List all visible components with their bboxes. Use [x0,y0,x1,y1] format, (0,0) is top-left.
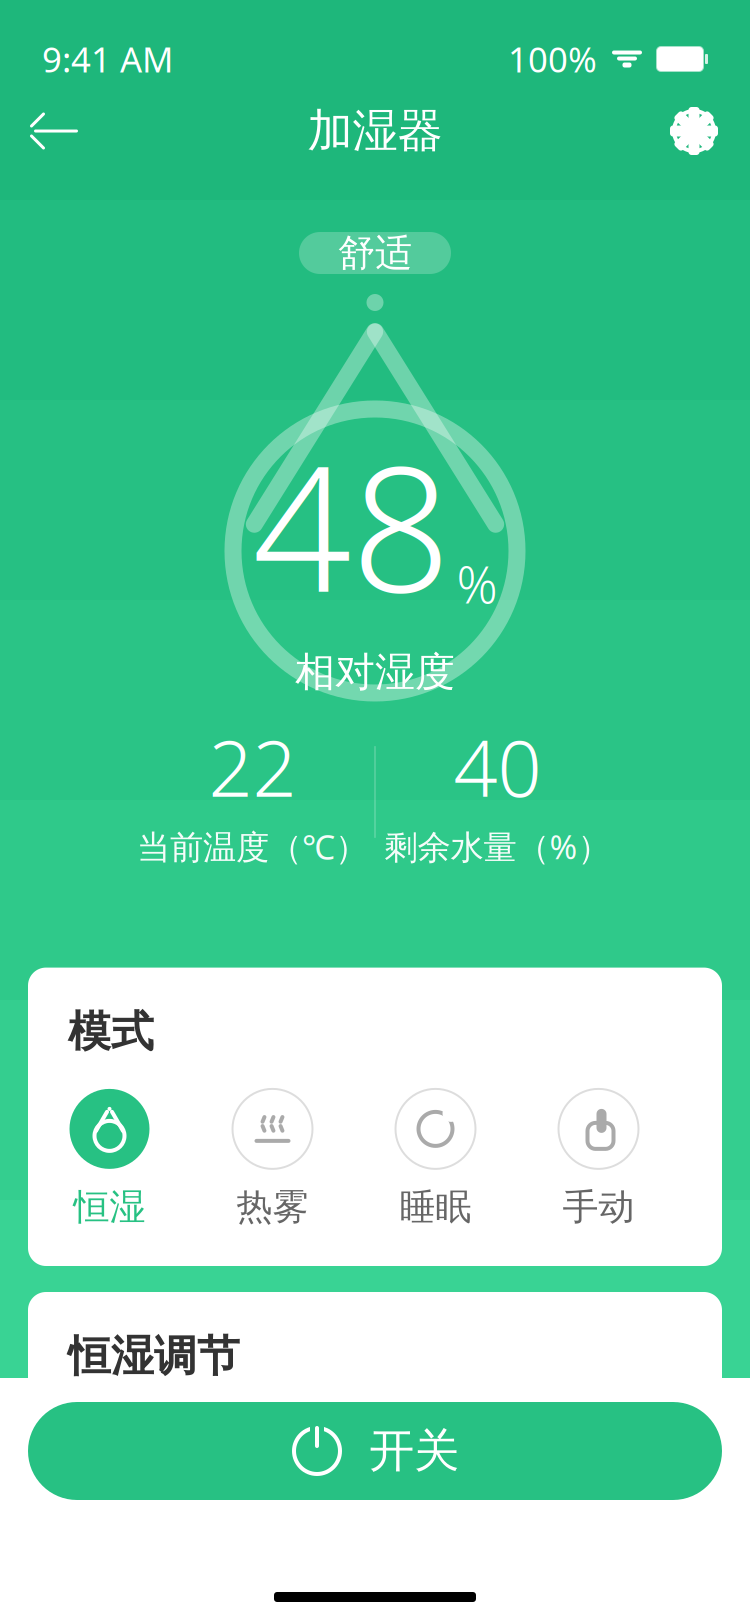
staticText: 手动 [562,1185,634,1229]
button[interactable]: 睡眠 [354,1086,517,1232]
button[interactable]: 舒适 [299,232,451,274]
staticText: 恒湿 [73,1185,145,1229]
staticText: 热雾 [236,1185,308,1229]
staticText: 恒湿调节 [68,1330,240,1382]
staticText: 相对湿度 [295,647,455,697]
staticText: 100% [508,36,597,82]
button[interactable]: 开关 [28,1402,722,1500]
staticText: 48 [252,409,450,639]
button[interactable]: 设置 [656,93,732,169]
button[interactable]: 返回 [18,93,94,169]
button[interactable]: 手动 [517,1086,680,1232]
staticText: 40 [453,715,541,818]
staticText: 剩余水量（%） [384,824,610,868]
staticText: 开关 [369,1423,459,1479]
staticText: 舒适 [338,230,412,276]
staticText: 60% [355,1418,428,1467]
button[interactable]: 恒湿 [28,1086,191,1232]
button[interactable]: 热雾 [191,1086,354,1232]
staticText: % [456,550,497,617]
staticText: 当前温度（℃） [137,824,368,868]
staticText: 模式 [68,1006,154,1058]
staticText: 加湿器 [307,103,442,159]
staticText: 22 [208,715,296,818]
staticText: 9:41 AM [42,36,173,82]
staticText: 睡眠 [399,1185,471,1229]
